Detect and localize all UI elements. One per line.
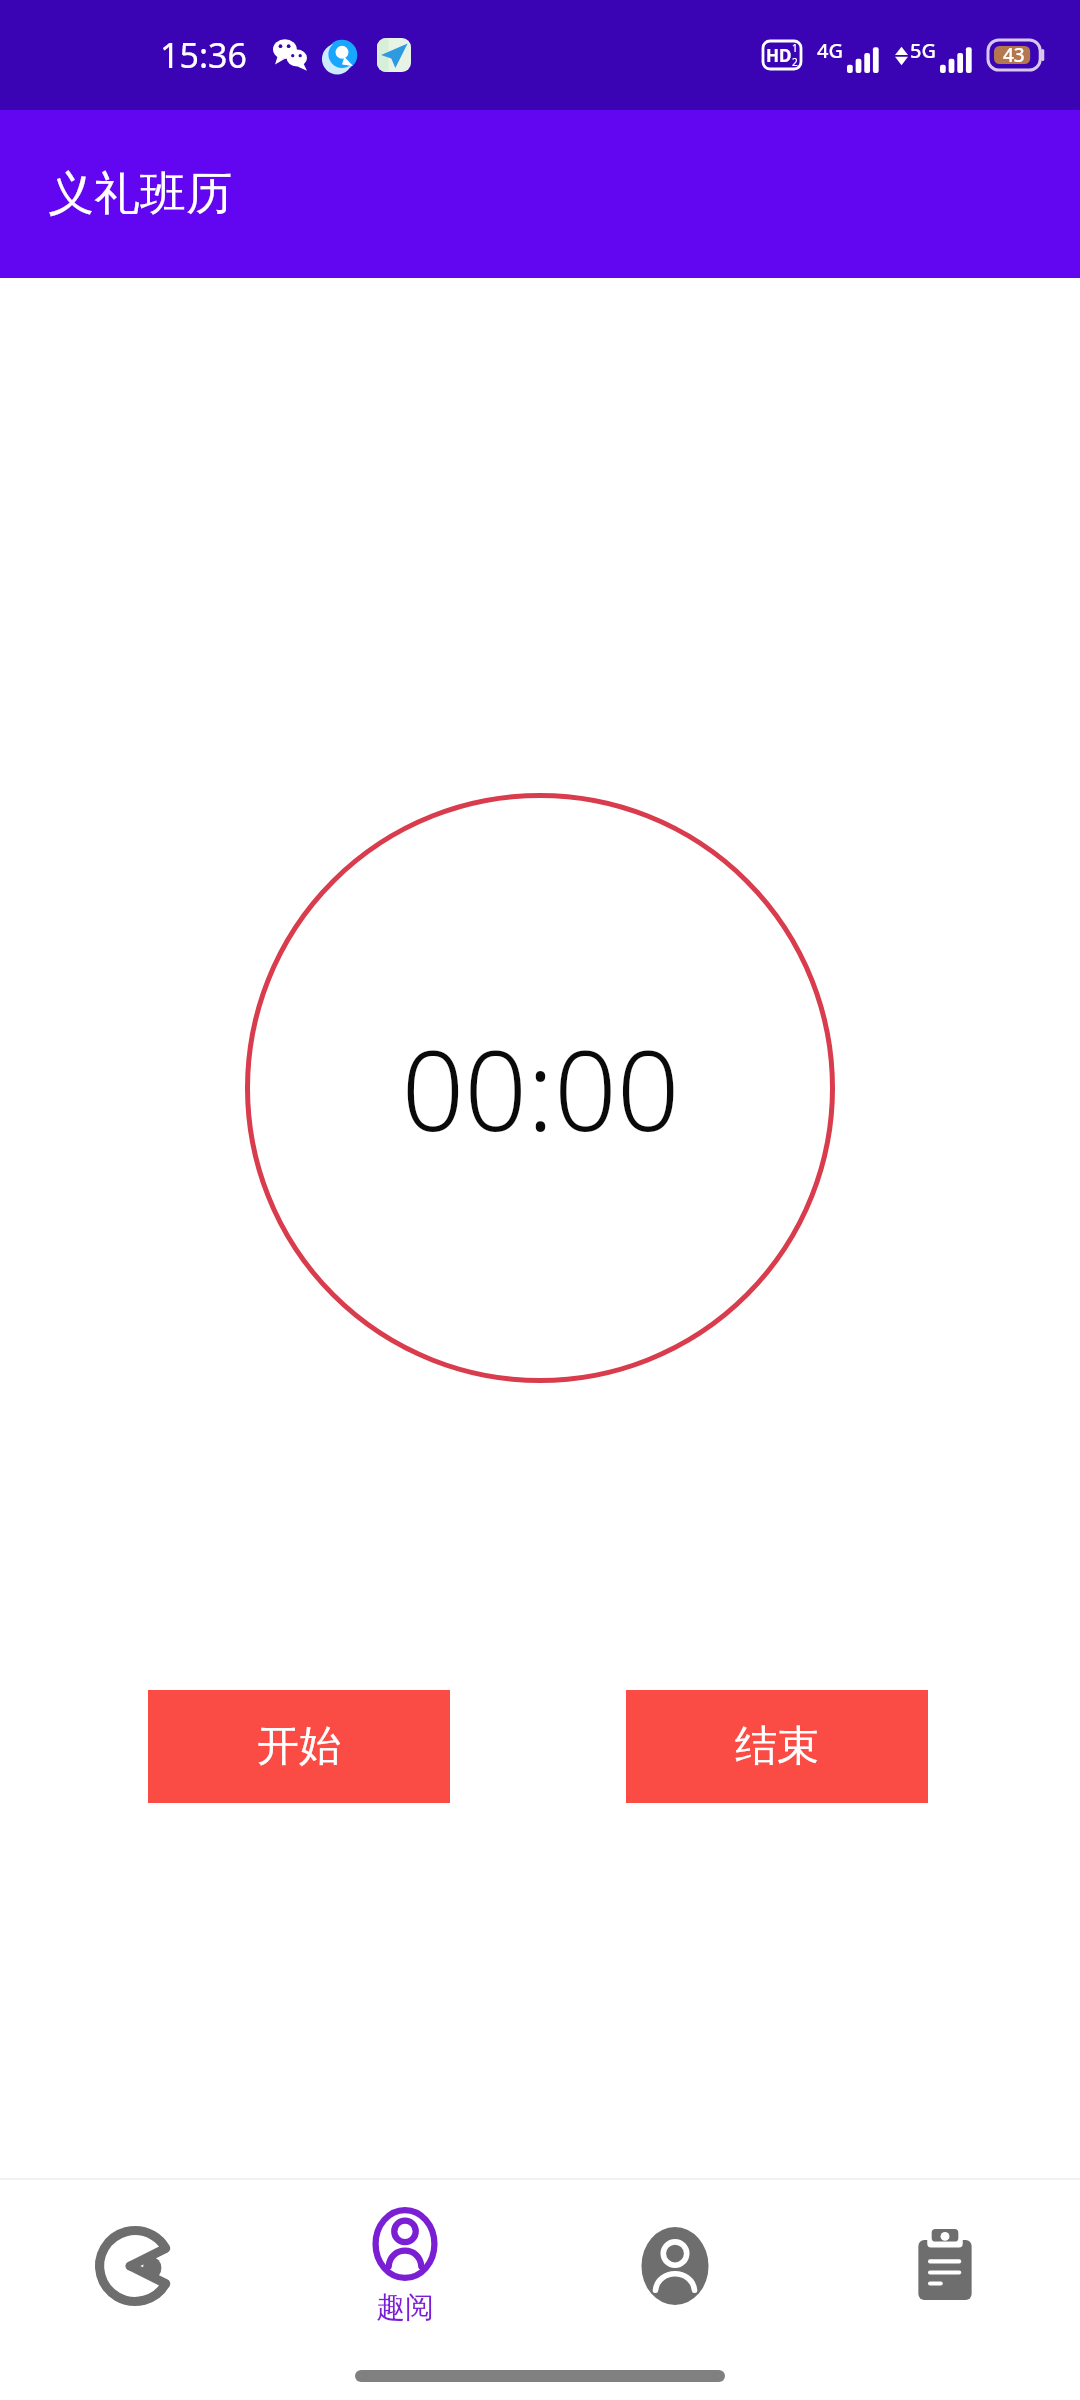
button[interactable]: 发现 (0, 2180, 270, 2352)
staticText: 开始 (257, 1720, 341, 1773)
staticText: 2 (792, 55, 798, 69)
staticText: 结束 (735, 1720, 819, 1773)
button[interactable]: 开始 (148, 1690, 450, 1803)
button[interactable]: 任务 (810, 2180, 1080, 2352)
staticText: 4G (817, 37, 843, 64)
staticText: 义礼班历 (48, 165, 232, 223)
button[interactable]: 我的 (540, 2180, 810, 2352)
staticText: HD (766, 44, 792, 67)
staticText: 00:00 (401, 1013, 680, 1163)
staticText: 趣阅 (376, 2289, 434, 2326)
staticText: 1 (792, 41, 798, 55)
button[interactable]: 趣阅 (270, 2180, 540, 2352)
staticText: 5G (910, 37, 936, 64)
button[interactable]: 结束 (626, 1690, 928, 1803)
staticText: 15:36 (160, 32, 247, 78)
staticText: 43 (1003, 42, 1025, 68)
